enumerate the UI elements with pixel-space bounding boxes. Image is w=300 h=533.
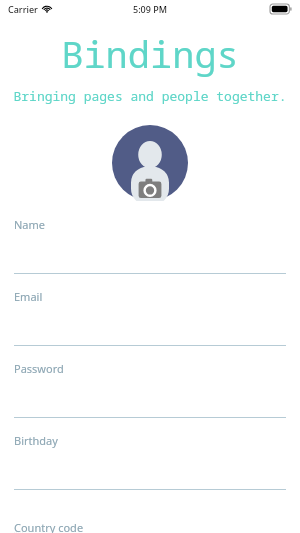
button[interactable]: Name bbox=[0, 217, 300, 289]
staticText: Country code bbox=[14, 520, 84, 533]
staticText: 5:09 PM bbox=[133, 3, 167, 15]
staticText: Email bbox=[14, 289, 43, 304]
staticText: Bringing pages and people together. bbox=[13, 87, 287, 105]
button[interactable]: Password bbox=[0, 361, 300, 433]
staticText: Password bbox=[14, 361, 64, 376]
staticText: Name bbox=[14, 217, 46, 232]
button[interactable]: Email bbox=[0, 289, 300, 361]
staticText: Carrier bbox=[8, 3, 38, 15]
staticText: Birthday bbox=[14, 433, 58, 448]
button[interactable]: Change profile photo bbox=[112, 125, 188, 201]
staticText: Bindings bbox=[61, 28, 239, 78]
button[interactable]: Birthday bbox=[0, 433, 300, 505]
